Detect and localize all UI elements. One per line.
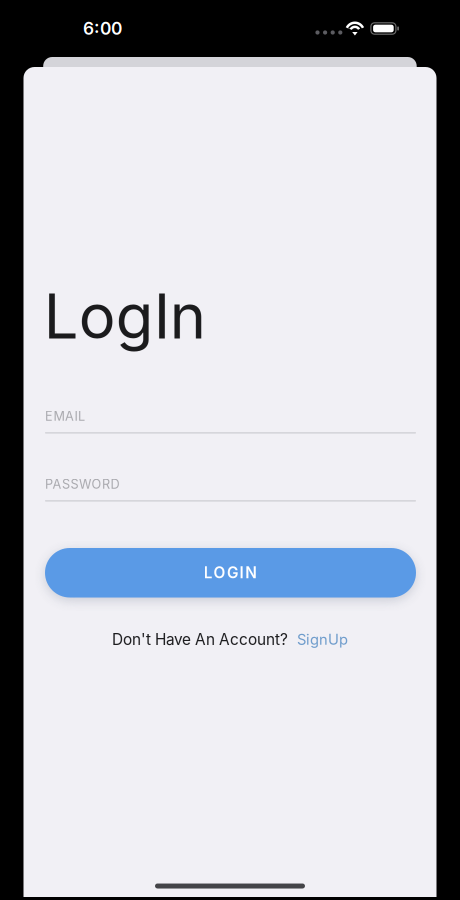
- button[interactable]: LOGIN: [45, 548, 416, 597]
- staticText: LOGIN: [204, 563, 257, 582]
- staticText: EMAIL: [45, 408, 85, 424]
- staticText: LogIn: [44, 279, 206, 353]
- button[interactable]: PASSWORD: [45, 476, 416, 501]
- staticText: Don't Have An Account?: [112, 630, 288, 649]
- staticText: SignUp: [297, 630, 348, 648]
- staticText: 6:00: [83, 18, 122, 39]
- staticText: PASSWORD: [45, 476, 119, 492]
- button[interactable]: SignUp: [297, 628, 348, 650]
- button[interactable]: EMAIL: [45, 408, 416, 433]
